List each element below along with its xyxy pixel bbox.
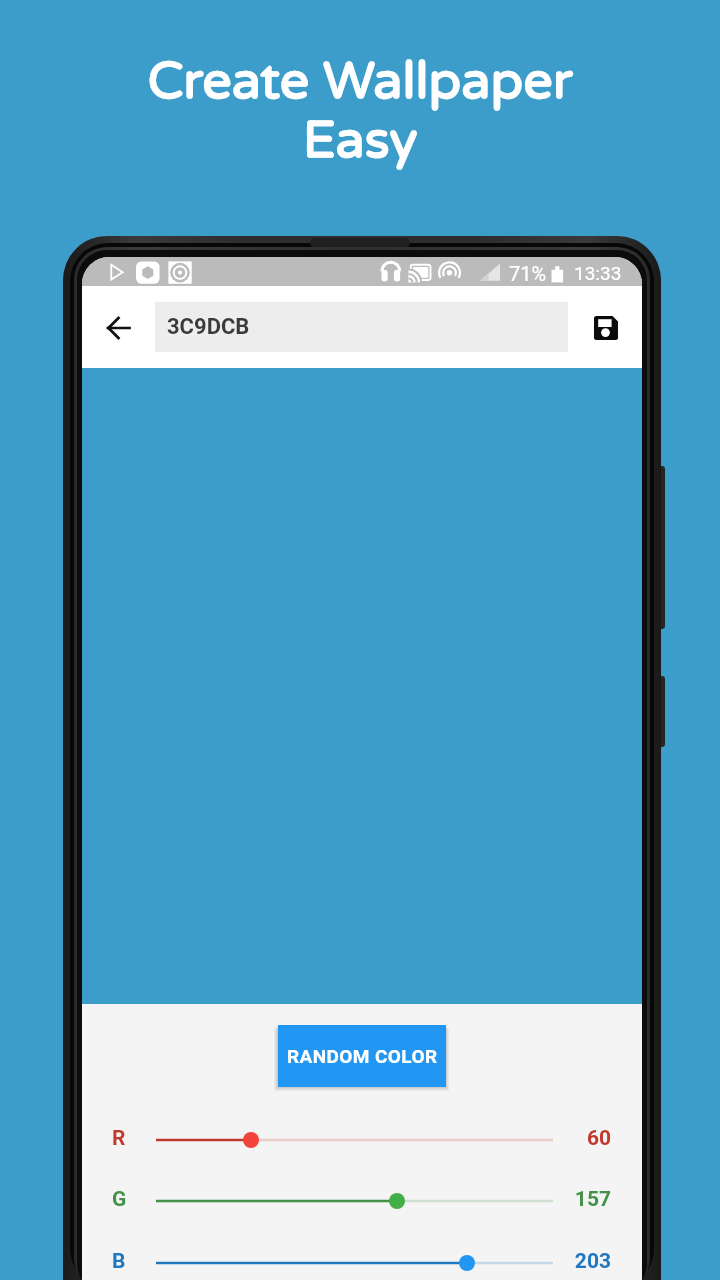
button[interactable]: Save [581,303,631,353]
button[interactable]: 3C9DCB [155,302,568,352]
button[interactable]: RANDOM COLOR [278,1025,446,1087]
staticText: 71% [509,262,547,285]
staticText: RANDOM COLOR [287,1045,438,1067]
staticText: 60 [490,1126,611,1151]
button[interactable]: R [82,1118,642,1162]
staticText: B [112,1249,126,1274]
staticText: 203 [490,1249,611,1274]
staticText: G [112,1187,127,1212]
staticText: 157 [490,1187,611,1212]
staticText: 13:33 [574,262,622,284]
staticText: 3C9DCB [167,314,250,340]
button[interactable]: G [82,1179,642,1223]
button[interactable]: Back [94,303,144,353]
staticText: Create Wallpaper Easy [147,50,573,172]
staticText: R [112,1126,126,1151]
button[interactable]: B [82,1241,642,1280]
